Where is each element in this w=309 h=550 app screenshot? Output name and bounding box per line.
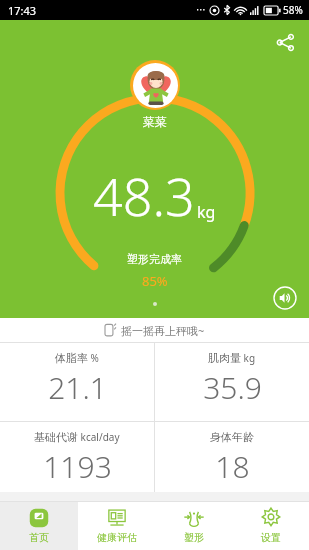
staticText: 塑形完成率 <box>127 252 182 266</box>
staticText: 首页 <box>29 531 49 544</box>
staticText: 基础代谢 <box>34 430 78 444</box>
button[interactable]: 体脂率 <box>0 343 154 421</box>
staticText: 48.3 <box>93 160 195 231</box>
button[interactable]: Share <box>269 26 301 58</box>
staticText: 18 <box>215 446 250 487</box>
staticText: ⋯ <box>196 4 206 16</box>
button[interactable]: 健康评估 <box>78 502 155 550</box>
staticText: 菜菜 <box>143 114 167 129</box>
staticText: 1193 <box>43 446 112 487</box>
staticText: 摇一摇再上秤哦~ <box>121 323 205 338</box>
button[interactable]: 肌肉量 <box>155 343 309 421</box>
staticText: 21.1 <box>48 367 107 408</box>
button[interactable]: 摇一摇再上秤哦~ <box>0 318 309 342</box>
staticText: kg <box>241 351 256 365</box>
staticText: kcal/day <box>78 430 120 444</box>
staticText: 体脂率 <box>55 351 88 365</box>
staticText: 健康评估 <box>97 531 137 544</box>
button[interactable]: 设置 <box>232 502 309 550</box>
button[interactable]: 首页 <box>0 502 78 550</box>
staticText: kg <box>197 201 216 223</box>
button[interactable]: 身体年龄 <box>155 422 309 492</box>
staticText: 35.9 <box>203 367 262 408</box>
button[interactable]: 塑形 <box>155 502 232 550</box>
button[interactable]: 基础代谢 <box>0 422 154 492</box>
staticText: 85% <box>142 272 168 290</box>
button[interactable]: Profile avatar <box>130 60 180 110</box>
staticText: 58% <box>283 3 303 17</box>
staticText: 身体年龄 <box>210 430 254 444</box>
button[interactable]: Sound <box>271 284 299 312</box>
staticText: % <box>88 351 99 365</box>
staticText: 塑形 <box>184 531 204 544</box>
staticText: 17:43 <box>8 3 37 18</box>
staticText: 肌肉量 <box>208 351 241 365</box>
staticText: 设置 <box>261 531 281 544</box>
